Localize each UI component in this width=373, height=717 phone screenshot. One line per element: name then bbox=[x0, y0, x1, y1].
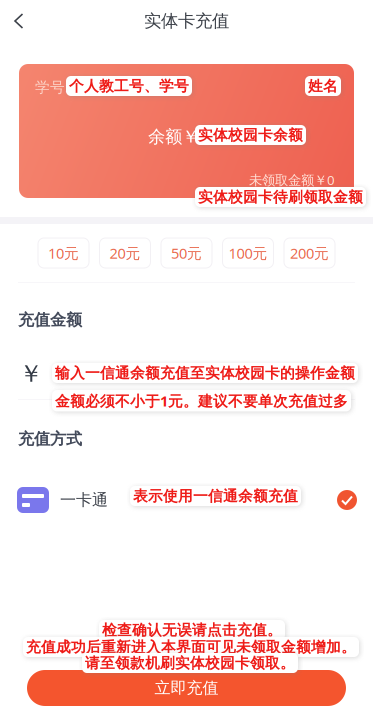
staticText: 200元 bbox=[290, 243, 329, 263]
button[interactable]: 20元 bbox=[99, 238, 150, 268]
staticText: 充值成功后重新进入本界面可见未领取金额增加。 bbox=[26, 638, 356, 656]
button[interactable]: 10元 bbox=[38, 238, 89, 268]
staticText: 实体卡充值 bbox=[144, 10, 229, 32]
staticText: ￥ bbox=[19, 359, 43, 388]
staticText: 50元 bbox=[171, 243, 202, 263]
button[interactable]: 200元 bbox=[284, 238, 335, 268]
staticText: 余额￥ bbox=[148, 126, 199, 147]
button[interactable]: 立即充值 bbox=[27, 670, 346, 706]
staticText: 100元 bbox=[228, 243, 267, 263]
staticText: 一卡通 bbox=[60, 490, 108, 510]
button[interactable]: Back bbox=[4, 6, 34, 36]
staticText: 请至领款机刷实体校园卡领取。 bbox=[85, 654, 295, 672]
button[interactable]: 50元 bbox=[161, 238, 212, 268]
staticText: 姓名 bbox=[308, 77, 338, 95]
staticText: 检查确认无误请点击充值。 bbox=[102, 621, 282, 639]
staticText: 10元 bbox=[48, 243, 79, 263]
staticText: 输入一信通余额充值至实体校园卡的操作金额 bbox=[55, 364, 355, 382]
staticText: 表示使用一信通余额充值 bbox=[133, 487, 298, 505]
staticText: 金额必须不小于1元。建议不要单次充值过多 bbox=[55, 391, 348, 410]
staticText: 立即充值 bbox=[154, 678, 218, 698]
staticText: 实体校园卡余额 bbox=[198, 126, 303, 144]
button[interactable]: 100元 bbox=[222, 238, 273, 268]
staticText: 学号: bbox=[35, 77, 69, 96]
staticText: 充值金额 bbox=[18, 310, 82, 330]
staticText: 个人教工号、学号 bbox=[69, 77, 189, 95]
staticText: 充值方式 bbox=[18, 429, 82, 449]
button[interactable]: 一卡通 bbox=[17, 487, 357, 513]
staticText: 实体校园卡待刷领取金额 bbox=[198, 188, 363, 206]
staticText: 未领取金额￥0 bbox=[249, 171, 335, 189]
staticText: 20元 bbox=[109, 243, 140, 263]
